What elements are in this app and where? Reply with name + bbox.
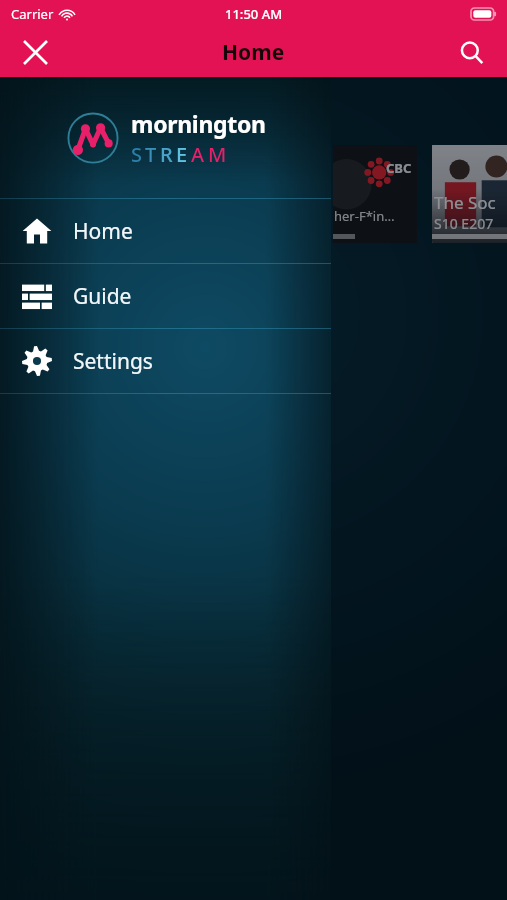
staticText: E <box>176 141 191 168</box>
staticText: R <box>160 141 176 168</box>
staticText: Home <box>73 217 133 246</box>
button[interactable]: Settings <box>0 329 331 393</box>
staticText: A <box>191 141 208 168</box>
button[interactable]: Close <box>6 28 64 77</box>
staticText: Guide <box>73 282 132 311</box>
staticText: S10 E207 <box>434 214 494 233</box>
staticText: S <box>131 141 145 168</box>
staticText: mornington <box>131 108 266 139</box>
staticText: 11:50 AM <box>225 5 283 23</box>
staticText: The Soc <box>434 191 496 214</box>
staticText: T <box>145 141 160 168</box>
button[interactable]: Home <box>0 199 331 263</box>
button[interactable]: Guide <box>0 264 331 328</box>
staticText: Home <box>222 38 285 67</box>
staticText: CBC <box>386 159 412 177</box>
staticText: Settings <box>73 347 153 376</box>
button[interactable]: CBC <box>333 145 417 243</box>
staticText: M <box>208 141 230 168</box>
staticText: her-F*in… <box>334 207 395 225</box>
button[interactable]: Search <box>445 28 499 77</box>
staticText: Carrier <box>11 5 54 23</box>
button[interactable]: The Soc <box>432 145 507 243</box>
